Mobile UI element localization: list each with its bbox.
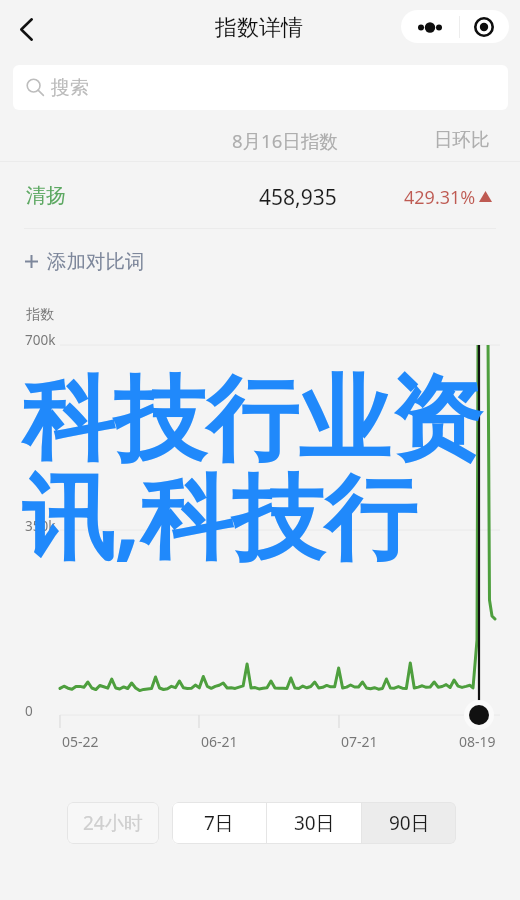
button[interactable]: 搜索 bbox=[13, 65, 508, 110]
button[interactable]: Back bbox=[4, 6, 48, 52]
staticText: 清扬 bbox=[26, 183, 66, 208]
staticText: 30日 bbox=[294, 810, 335, 836]
button[interactable]: 30日 bbox=[267, 802, 361, 844]
staticText: 05-22 bbox=[62, 732, 99, 751]
staticText: 06-21 bbox=[201, 732, 238, 751]
staticText: 0 bbox=[25, 702, 33, 720]
staticText: 24小时 bbox=[83, 810, 143, 836]
staticText: 指数 bbox=[26, 306, 54, 324]
button[interactable]: 清扬 bbox=[0, 162, 520, 228]
staticText: 90日 bbox=[389, 810, 430, 836]
staticText: 科技行业资讯,科技行 bbox=[22, 362, 520, 577]
staticText: 429.31% bbox=[404, 185, 476, 210]
staticText: 指数详情 bbox=[215, 14, 303, 42]
staticText: 7日 bbox=[204, 810, 234, 836]
staticText: 添加对比词 bbox=[47, 249, 145, 274]
button[interactable]: More options bbox=[401, 10, 459, 43]
button[interactable]: 24小时 bbox=[67, 802, 159, 844]
staticText: 700k bbox=[25, 331, 56, 349]
staticText: 07-21 bbox=[341, 732, 378, 751]
staticText: 日环比 bbox=[434, 128, 490, 151]
staticText: 8月16日指数 bbox=[232, 128, 338, 153]
button[interactable]: 90日 bbox=[362, 802, 456, 844]
button[interactable]: 7日 bbox=[172, 802, 266, 844]
button[interactable]: 添加对比词 bbox=[24, 238, 145, 284]
staticText: 搜索 bbox=[51, 76, 89, 100]
staticText: 08-19 bbox=[459, 732, 496, 751]
staticText: 350k bbox=[25, 517, 56, 535]
staticText: 458,935 bbox=[259, 183, 337, 212]
button[interactable]: Close bbox=[460, 10, 508, 43]
